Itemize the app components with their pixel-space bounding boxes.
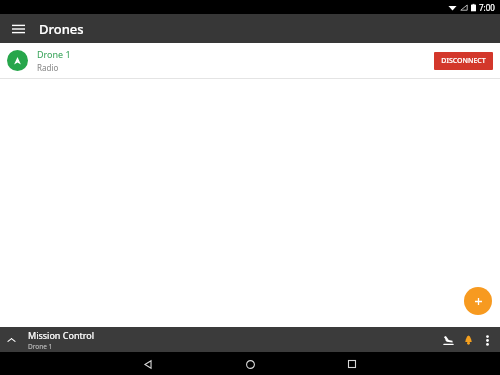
button[interactable]: Expand mission control bbox=[3, 332, 19, 348]
button[interactable]: Recent apps bbox=[341, 353, 363, 375]
button[interactable]: Land bbox=[438, 330, 458, 350]
staticText: DISCONNECT bbox=[441, 56, 486, 66]
button[interactable]: Back bbox=[137, 353, 159, 375]
staticText: Drone 1 bbox=[28, 342, 53, 351]
button[interactable]: Add drone bbox=[464, 287, 492, 315]
button[interactable]: Home bbox=[239, 353, 261, 375]
staticText: Mission Control bbox=[28, 329, 95, 341]
staticText: 7:00 bbox=[479, 2, 495, 13]
staticText: Radio bbox=[37, 62, 59, 73]
button[interactable]: DISCONNECT bbox=[434, 52, 493, 70]
staticText: Drone 1 bbox=[37, 48, 71, 60]
button[interactable]: Expand mission control bbox=[0, 327, 500, 352]
button[interactable]: Open navigation drawer bbox=[6, 17, 30, 41]
button[interactable]: More options bbox=[478, 331, 496, 349]
button[interactable]: Drone 1 bbox=[0, 43, 500, 78]
button[interactable]: Alerts bbox=[458, 330, 478, 350]
staticText: Drones bbox=[39, 20, 84, 38]
